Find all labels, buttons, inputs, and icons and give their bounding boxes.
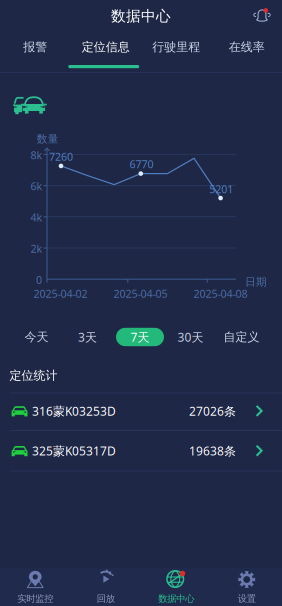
staticText: 今天 — [24, 330, 48, 344]
staticText: 自定义 — [223, 330, 259, 344]
staticText: 30天 — [177, 329, 203, 345]
button[interactable]: 实时监控 — [0, 568, 70, 606]
staticText: 7天 — [130, 329, 149, 345]
staticText: 2025-04-05 — [113, 286, 167, 301]
staticText: 定位信息 — [82, 40, 130, 54]
button[interactable]: 行驶里程 — [141, 33, 211, 71]
staticText: 7260 — [49, 149, 73, 164]
button[interactable]: 设置 — [211, 568, 282, 606]
staticText: 3天 — [78, 329, 97, 345]
button[interactable]: 3天 — [62, 324, 113, 350]
staticText: 2025-04-02 — [34, 286, 88, 301]
staticText: 定位统计 — [9, 368, 57, 383]
staticText: 报警 — [23, 40, 47, 54]
staticText: 设置 — [238, 593, 256, 604]
staticText: 回放 — [97, 593, 115, 604]
button[interactable]: 7天 — [114, 324, 165, 350]
staticText: 行驶里程 — [152, 40, 200, 54]
button[interactable]: 自定义 — [216, 324, 267, 350]
button[interactable]: 定位信息 — [70, 33, 141, 71]
button[interactable]: 30天 — [165, 324, 216, 350]
staticText: 实时监控 — [17, 593, 53, 604]
button[interactable]: 报警 — [0, 33, 70, 71]
staticText: 数据中心 — [111, 7, 171, 25]
staticText: 6770 — [130, 157, 154, 171]
staticText: 数量 — [37, 132, 59, 145]
staticText: 日期 — [245, 275, 267, 288]
staticText: 6k — [30, 179, 42, 193]
staticText: 325蒙K05317D — [32, 443, 116, 459]
button[interactable]: Notifications — [252, 6, 272, 26]
staticText: 316蒙K03253D — [32, 403, 116, 419]
staticText: 2025-04-08 — [193, 286, 247, 301]
staticText: 27026条 — [189, 403, 236, 419]
button[interactable]: 325蒙K05317D — [0, 431, 282, 471]
button[interactable]: 今天 — [11, 324, 62, 350]
staticText: 在线率 — [229, 40, 265, 54]
staticText: 19638条 — [189, 443, 236, 459]
staticText: 0 — [36, 273, 42, 287]
button[interactable]: 数据中心 — [141, 568, 211, 606]
button[interactable]: 回放 — [70, 568, 141, 606]
staticText: 5201 — [209, 182, 233, 196]
button[interactable]: 316蒙K03253D — [0, 392, 282, 429]
staticText: 数据中心 — [158, 593, 194, 604]
staticText: 8k — [30, 148, 42, 162]
staticText: 2k — [30, 241, 42, 256]
staticText: 4k — [30, 210, 42, 224]
button[interactable]: 在线率 — [211, 33, 282, 71]
